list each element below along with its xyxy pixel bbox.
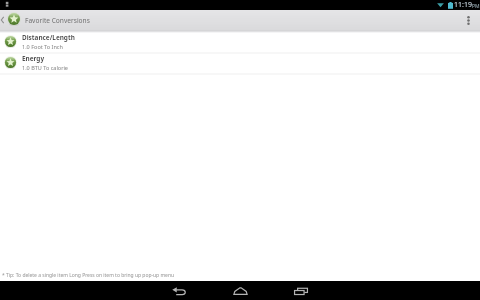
staticText: 1.0 BTU To calorie (22, 64, 68, 71)
button[interactable]: Recents (279, 281, 323, 300)
button[interactable]: Up (0, 10, 90, 30)
button[interactable]: Home (218, 281, 262, 300)
button[interactable]: More options (456, 10, 480, 30)
staticText: 1.0 Foot To Inch (22, 43, 63, 50)
staticText: 11:19 (454, 0, 472, 10)
staticText: Favorite Conversions (25, 16, 90, 25)
other: Up (0, 16, 6, 24)
staticText: Energy (22, 54, 45, 63)
button[interactable]: Back (157, 281, 201, 300)
button[interactable]: Distance/Length (0, 33, 480, 52)
staticText: * Tip: To delete a single item Long Pres… (2, 272, 175, 279)
staticText: PM (472, 3, 480, 10)
staticText: Distance/Length (22, 33, 75, 42)
button[interactable]: Energy (0, 54, 480, 73)
